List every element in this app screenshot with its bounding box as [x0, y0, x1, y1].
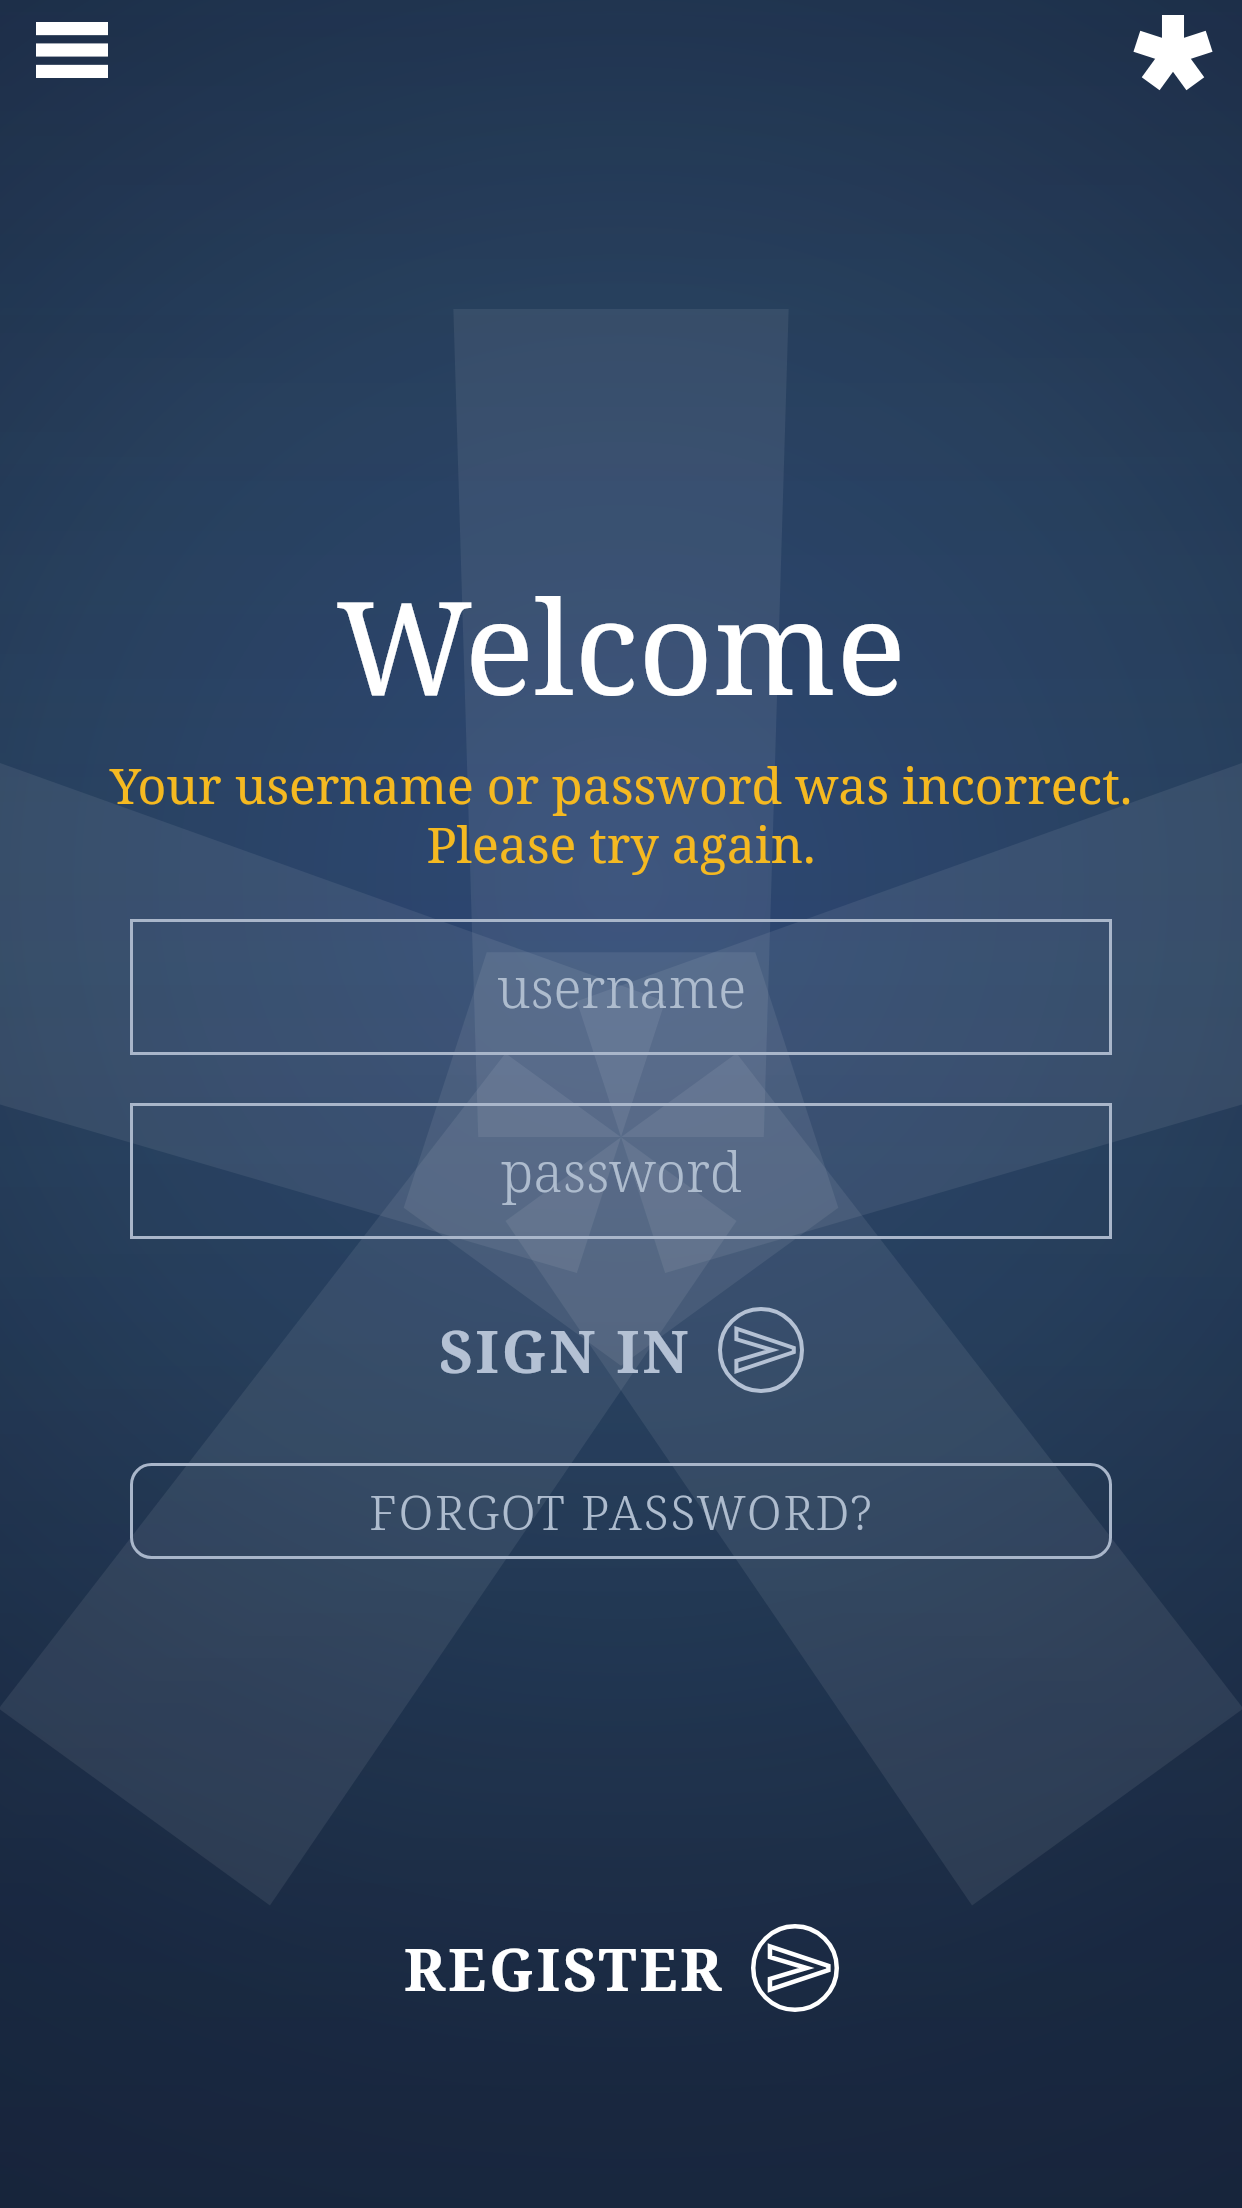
button[interactable]: REGISTER [404, 1924, 839, 2012]
button[interactable]: SIGN IN [439, 1307, 804, 1393]
staticText: Welcome [0, 556, 1242, 733]
staticText: SIGN IN [439, 1311, 692, 1390]
staticText: REGISTER [404, 1929, 725, 2008]
button[interactable]: Favorites [1126, 6, 1220, 100]
button[interactable]: password [130, 1103, 1112, 1239]
staticText: password [501, 1134, 742, 1208]
staticText: username [497, 950, 746, 1024]
button[interactable]: Menu [26, 12, 118, 88]
button[interactable]: FORGOT PASSWORD? [130, 1463, 1112, 1559]
button[interactable]: username [130, 919, 1112, 1055]
staticText: FORGOT PASSWORD? [369, 1479, 874, 1544]
staticText: Your username or password was incorrect.… [56, 751, 1186, 877]
